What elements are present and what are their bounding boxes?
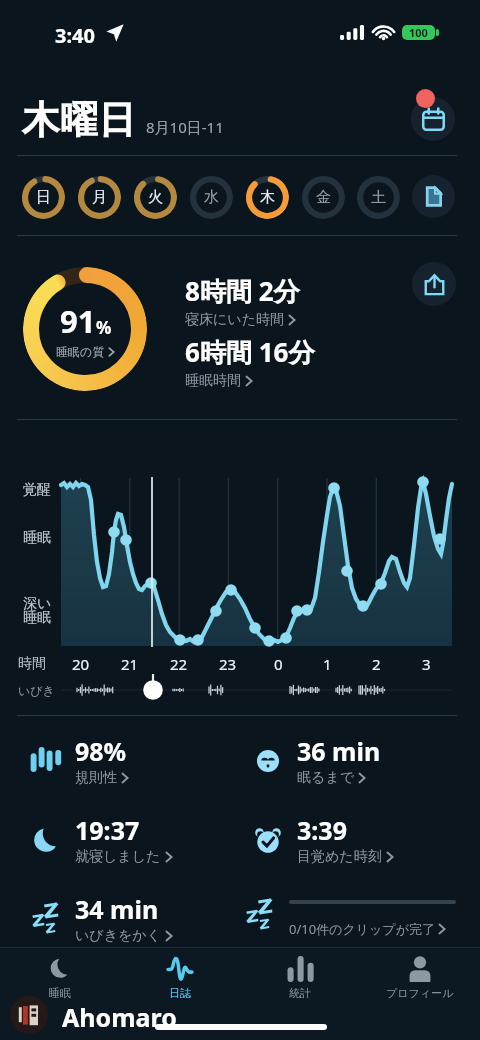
staticText: 眠るまで [297, 769, 354, 787]
staticText: 8時間 2分 [185, 273, 300, 309]
button[interactable]: 98% [26, 734, 244, 787]
button[interactable]: 91 [23, 267, 147, 391]
button[interactable]: 6時間 16分 [185, 334, 315, 390]
staticText: 覚醒 [23, 481, 51, 499]
staticText: 統計 [289, 986, 311, 1000]
button[interactable]: 36 min [248, 734, 466, 787]
staticText: 日誌 [169, 986, 191, 1000]
staticText: 日 [36, 188, 51, 207]
button[interactable]: Share [412, 262, 456, 306]
button[interactable]: 統計 [240, 951, 360, 1005]
staticText: 木 [260, 188, 275, 207]
button[interactable]: 19:37 [26, 813, 244, 866]
staticText: 3:40 [55, 22, 95, 49]
staticText: 木曜日 [22, 96, 136, 144]
staticText: 3:39 [297, 813, 347, 847]
staticText: 91 [60, 300, 96, 342]
button[interactable]: 8時間 2分 [185, 273, 300, 329]
staticText: いびき [18, 683, 55, 698]
staticText: 睡眠時間 [185, 372, 241, 390]
button[interactable]: 0/10件のクリップが完了 [240, 892, 472, 938]
staticText: 水 [204, 188, 219, 207]
staticText: 6時間 16分 [185, 334, 315, 370]
button[interactable]: 土 [356, 175, 400, 219]
staticText: 月 [92, 188, 107, 207]
staticText: 目覚めた時刻 [297, 848, 382, 866]
button[interactable]: 睡眠 [0, 951, 120, 1005]
staticText: 睡眠の質 [56, 344, 105, 359]
button[interactable]: 34 min [26, 892, 244, 945]
staticText: 0 [274, 654, 283, 674]
staticText: 19:37 [75, 813, 140, 847]
staticText: プロフィール [386, 986, 454, 1000]
staticText: 21 [121, 654, 139, 674]
staticText: 0/10件のクリップが完了 [289, 920, 435, 938]
staticText: Ahomaro [62, 1000, 177, 1034]
button[interactable]: 木 [245, 175, 289, 219]
staticText: 睡眠 [49, 986, 71, 1000]
staticText: 睡眠 [23, 529, 51, 547]
staticText: 規則性 [75, 769, 117, 787]
staticText: 100 [409, 25, 428, 40]
staticText: 3 [422, 654, 431, 674]
staticText: 土 [371, 188, 386, 207]
staticText: いびきをかく [75, 927, 161, 945]
staticText: 34 min [75, 892, 159, 926]
staticText: 深い [23, 595, 52, 613]
staticText: 22 [170, 654, 188, 674]
staticText: 2 [372, 654, 381, 674]
staticText: 睡眠 [23, 609, 51, 627]
staticText: 火 [148, 188, 163, 207]
staticText: 1 [323, 654, 332, 674]
button[interactable]: 水 [189, 175, 233, 219]
staticText: 就寝しました [75, 848, 161, 866]
staticText: 98% [75, 734, 127, 768]
button[interactable]: Notes [412, 175, 455, 218]
button[interactable]: 日 [21, 175, 65, 219]
staticText: 20 [72, 654, 90, 674]
staticText: 金 [316, 188, 331, 207]
button[interactable]: 3:39 [248, 813, 466, 866]
staticText: 時間 [18, 655, 46, 673]
button[interactable]: プロフィール [360, 951, 480, 1005]
button[interactable]: 金 [301, 175, 345, 219]
button[interactable]: 月 [77, 175, 121, 219]
staticText: 8月10日-11 [146, 117, 224, 137]
staticText: 寝床にいた時間 [185, 311, 284, 329]
staticText: 23 [219, 654, 237, 674]
button[interactable]: 火 [133, 175, 177, 219]
staticText: 36 min [297, 734, 381, 768]
button[interactable]: 日誌 [120, 951, 240, 1005]
button[interactable]: Calendar [411, 97, 455, 141]
staticText: % [96, 316, 112, 339]
